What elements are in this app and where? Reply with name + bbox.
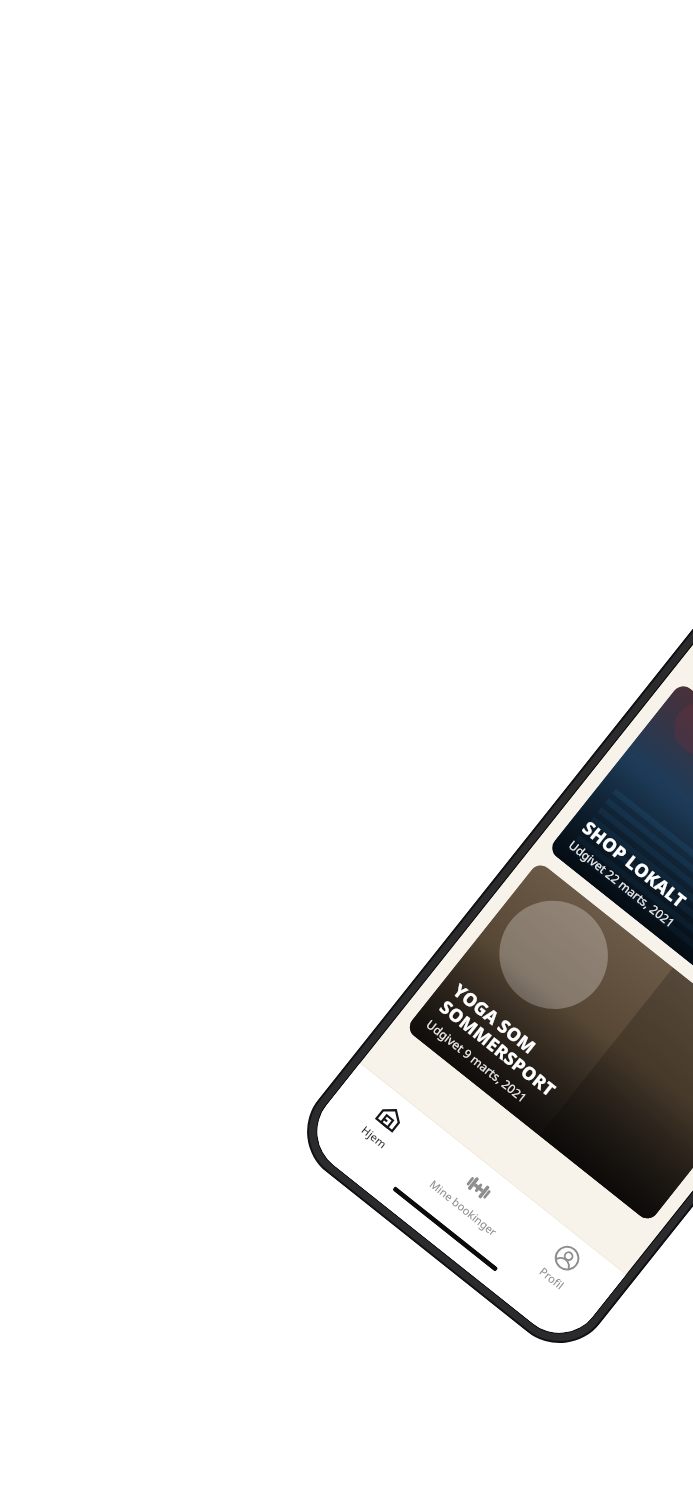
button[interactable]: SHOP LOKALT	[548, 681, 693, 1044]
staticText: Mine bookinger	[427, 1176, 500, 1239]
other: Profil	[549, 1241, 585, 1276]
staticText: Hjem	[359, 1122, 390, 1151]
staticText: Udgivet 9 marts, 2021	[423, 1016, 530, 1105]
staticText: YOGA SOM SOMMERSPORT	[435, 978, 574, 1103]
button[interactable]: Profil	[503, 1205, 626, 1319]
button[interactable]: Book hold	[691, 609, 693, 730]
staticText: Profil	[536, 1263, 568, 1293]
other: Hjem	[373, 1100, 408, 1135]
staticText: SHOP LOKALT	[577, 815, 691, 913]
button[interactable]: YOGA SOM SOMMERSPORT	[405, 861, 693, 1223]
button[interactable]: Mine bookinger	[414, 1134, 537, 1248]
staticText: Udgivet 22 marts, 2021	[566, 836, 678, 931]
other: Mine bookinger	[461, 1170, 496, 1205]
button[interactable]: Hjem	[325, 1063, 449, 1178]
